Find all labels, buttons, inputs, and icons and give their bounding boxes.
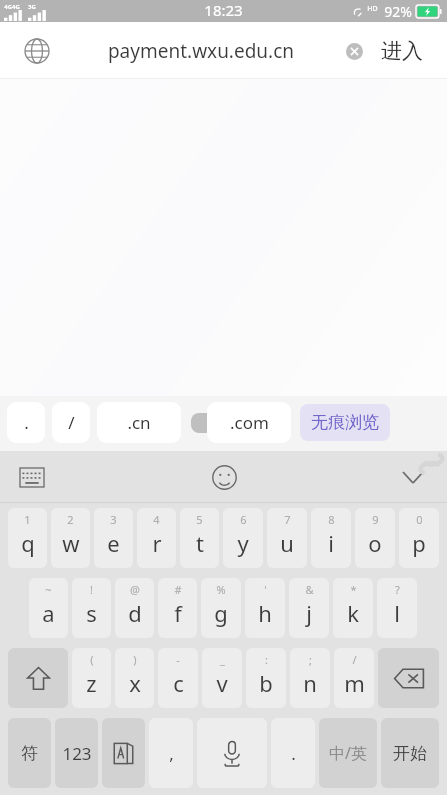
button[interactable]: / — [52, 402, 90, 443]
button[interactable]: 开始 — [381, 718, 439, 788]
staticText: . — [24, 411, 29, 434]
staticText: ! — [90, 582, 93, 597]
button[interactable]: * — [333, 578, 373, 638]
staticText: . — [291, 742, 296, 765]
staticText: f — [174, 598, 182, 628]
staticText: ? — [395, 582, 400, 597]
staticText: % — [216, 582, 226, 597]
staticText: ~ — [45, 582, 52, 597]
button[interactable]: ; — [290, 648, 330, 708]
button[interactable]: 7 — [267, 508, 307, 568]
button[interactable]: @ — [115, 578, 154, 638]
staticText: - — [176, 652, 180, 667]
staticText: d — [128, 598, 142, 628]
staticText: l — [394, 598, 400, 628]
button[interactable]: 符 — [8, 718, 51, 788]
staticText: z — [86, 668, 97, 698]
button[interactable]: % — [201, 578, 241, 638]
staticText: 7 — [284, 512, 291, 527]
staticText: 符 — [21, 743, 38, 764]
staticText: # — [174, 582, 182, 597]
button[interactable]: ' — [245, 578, 285, 638]
button[interactable]: Shift — [8, 648, 68, 708]
button[interactable]: 123 — [55, 718, 98, 788]
staticText: 8 — [328, 512, 335, 527]
button[interactable]: Emoji — [205, 458, 243, 496]
button[interactable]: ) — [115, 648, 154, 708]
button[interactable]: ? — [377, 578, 417, 638]
staticText: 9 — [372, 512, 379, 527]
button[interactable]: .cn — [97, 402, 181, 443]
staticText: 5 — [196, 512, 203, 527]
button[interactable]: / — [334, 648, 374, 708]
button[interactable]: Voice input — [197, 718, 267, 788]
staticText: c — [173, 668, 184, 698]
button[interactable]: Clear — [337, 34, 371, 68]
staticText: payment.wxu.edu.cn — [65, 38, 337, 64]
staticText: ; — [309, 652, 312, 667]
staticText: 2 — [67, 512, 74, 527]
button[interactable]: 6 — [223, 508, 263, 568]
staticText: 中/英 — [329, 742, 367, 764]
button[interactable]: Keyboard — [15, 460, 49, 494]
staticText: t — [196, 528, 204, 558]
button[interactable]: ~ — [29, 578, 68, 638]
staticText: ' — [264, 582, 267, 597]
button[interactable]: 0 — [399, 508, 439, 568]
staticText: 无痕浏览 — [311, 412, 379, 433]
staticText: 3 — [110, 512, 117, 527]
button[interactable]: 9 — [355, 508, 395, 568]
staticText: 18:23 — [204, 0, 243, 20]
button[interactable]: 无痕浏览 — [300, 404, 390, 441]
button[interactable]: 2 — [51, 508, 90, 568]
button[interactable]: # — [158, 578, 197, 638]
button[interactable]: : — [246, 648, 286, 708]
button[interactable]: 8 — [311, 508, 351, 568]
staticText: / — [352, 652, 357, 667]
button[interactable]: .com — [207, 402, 291, 443]
button[interactable]: 1 — [8, 508, 47, 568]
staticText: y — [237, 528, 249, 558]
staticText: ( — [90, 652, 94, 667]
staticText: HD — [367, 4, 378, 14]
button[interactable]: . — [7, 402, 45, 443]
staticText: o — [368, 528, 382, 558]
staticText: ) — [133, 652, 137, 667]
button[interactable]: Input method — [102, 718, 145, 788]
button[interactable]: , — [149, 718, 193, 788]
staticText: 6 — [240, 512, 247, 527]
button[interactable]: & — [289, 578, 329, 638]
button[interactable]: Backspace — [378, 648, 439, 708]
button[interactable]: 进入 — [371, 32, 433, 70]
staticText: .com — [230, 411, 269, 434]
button[interactable]: 3 — [94, 508, 133, 568]
button[interactable]: 中/英 — [319, 718, 377, 788]
button[interactable]: 5 — [180, 508, 219, 568]
staticText: 开始 — [393, 743, 427, 764]
staticText: v — [216, 668, 228, 698]
staticText: w — [62, 528, 80, 558]
staticText: p — [412, 528, 426, 558]
staticText: g — [214, 598, 228, 628]
staticText: * — [350, 582, 357, 597]
staticText: i — [328, 528, 334, 558]
button[interactable]: _ — [202, 648, 242, 708]
staticText: 92% — [384, 2, 412, 21]
other: Site — [24, 38, 50, 64]
button[interactable]: . — [271, 718, 315, 788]
staticText: 进入 — [381, 38, 423, 64]
button[interactable]: 4 — [137, 508, 176, 568]
staticText: b — [259, 668, 273, 698]
staticText: h — [258, 598, 272, 628]
staticText: s — [86, 598, 97, 628]
button[interactable]: - — [158, 648, 198, 708]
button[interactable]: ! — [72, 578, 111, 638]
staticText: .cn — [127, 411, 151, 434]
button[interactable]: ( — [72, 648, 111, 708]
button[interactable]: Hide keyboard — [395, 459, 431, 495]
staticText: a — [42, 598, 55, 628]
staticText: , — [169, 742, 174, 765]
staticText: 1 — [24, 512, 31, 527]
staticText: 4G4G — [4, 3, 20, 11]
staticText: & — [305, 582, 314, 597]
